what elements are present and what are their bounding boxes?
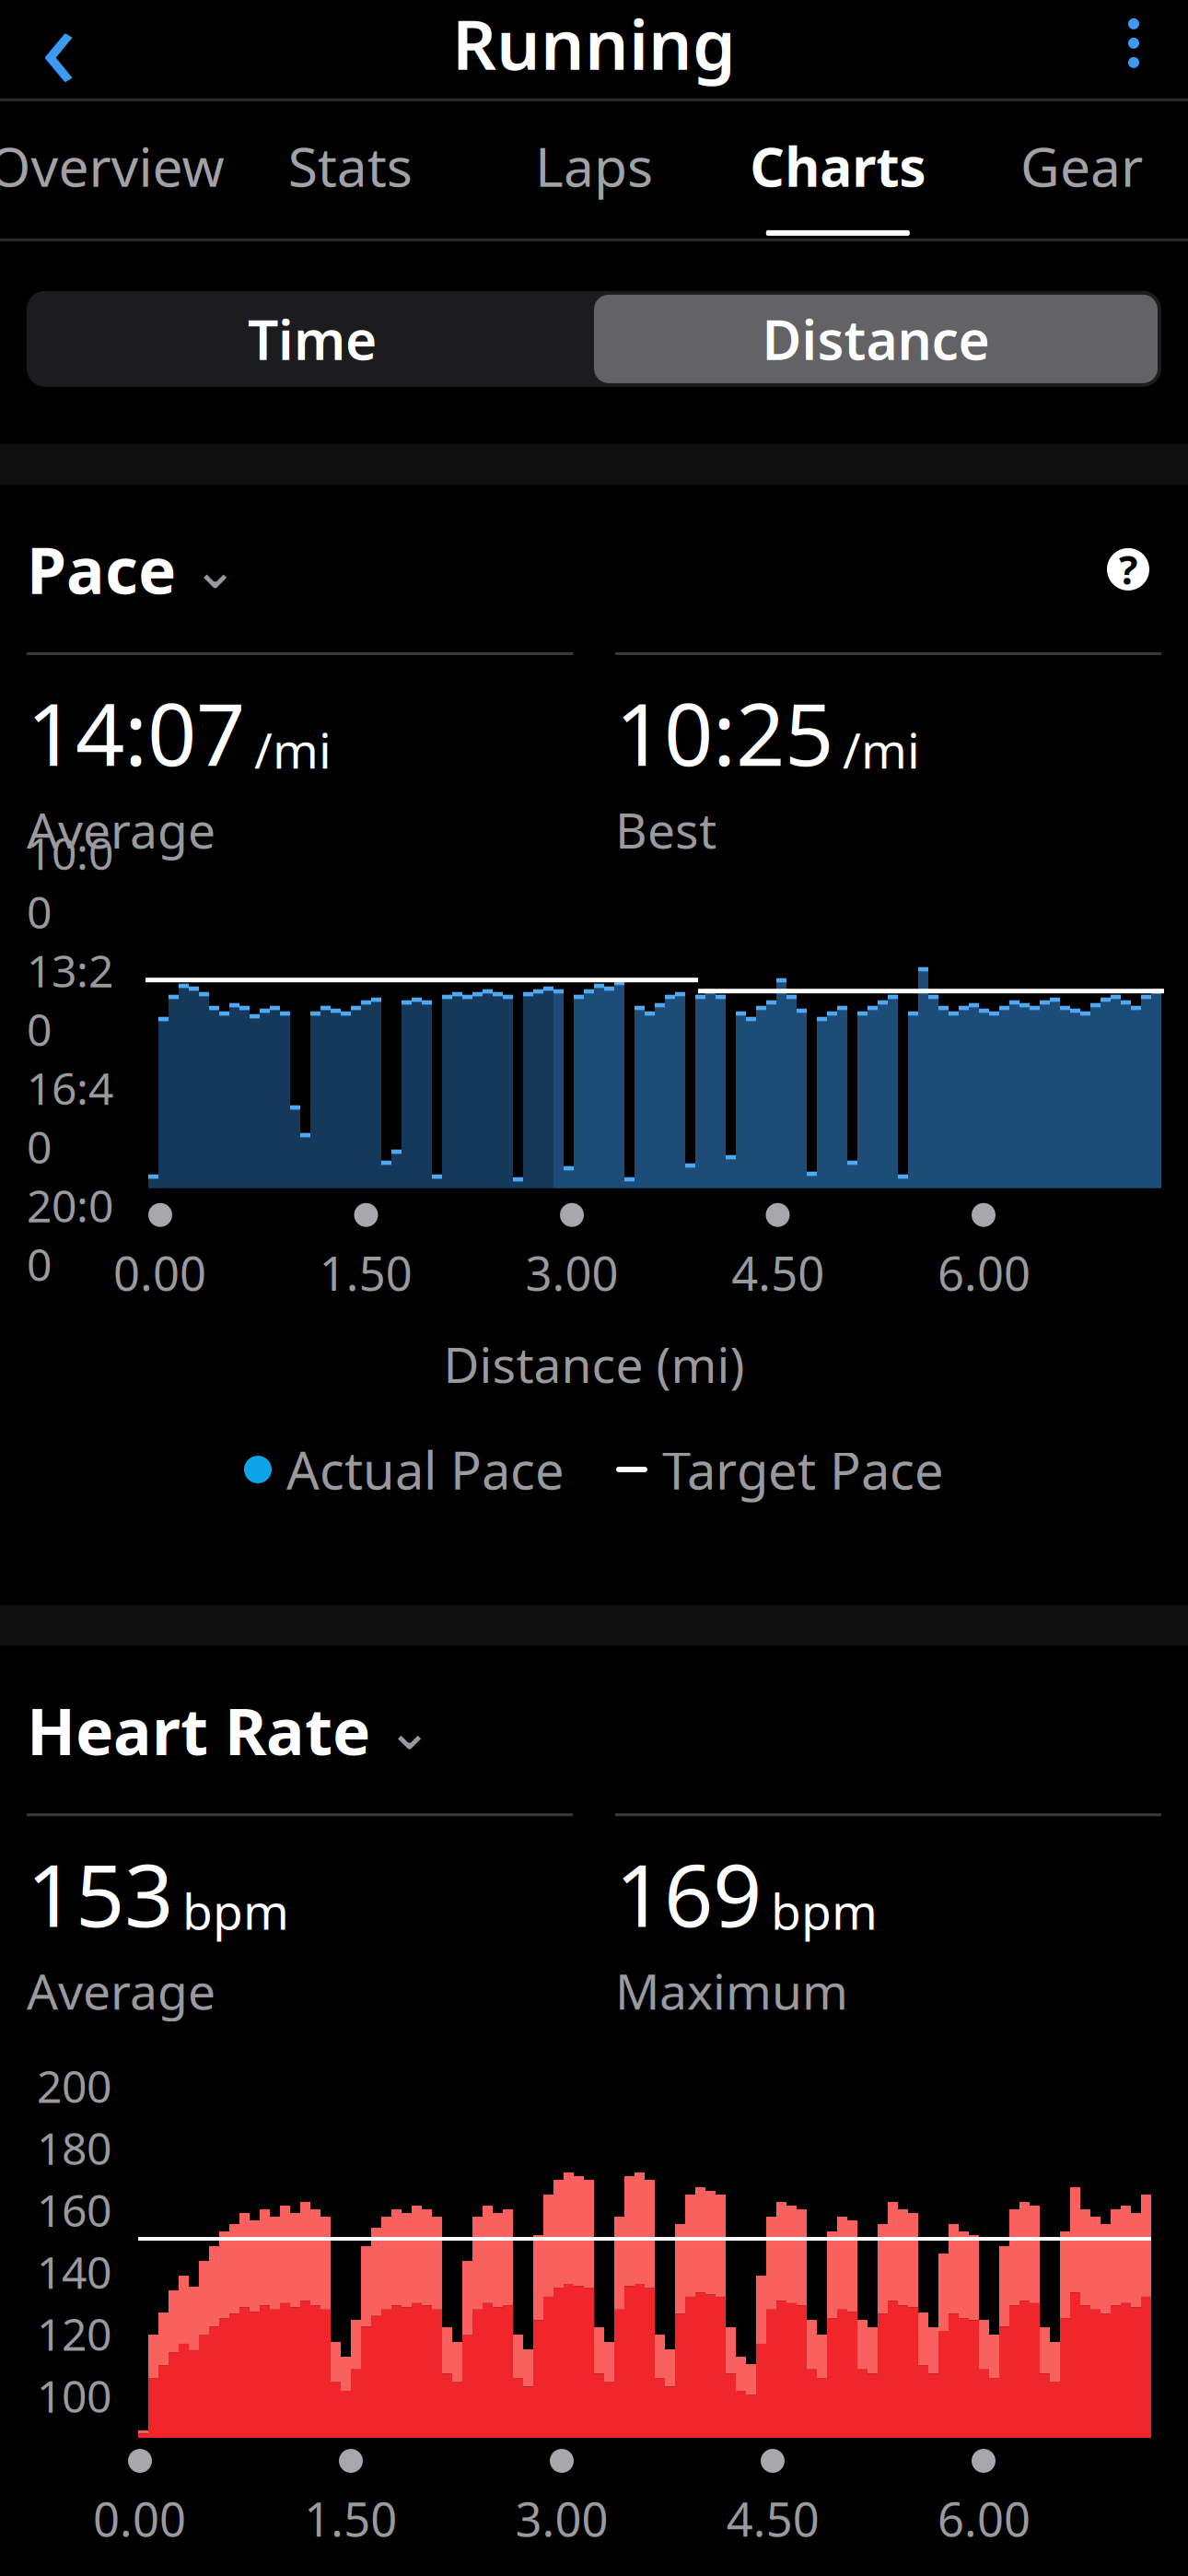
staticText: Target Pace <box>662 1435 944 1504</box>
staticText: 16:40 <box>27 1058 113 1176</box>
staticText: 153 <box>27 1836 173 1951</box>
staticText: Distance (mi) <box>443 1331 745 1397</box>
staticText: 10:25 <box>615 675 833 789</box>
button[interactable]: Overview <box>0 101 228 241</box>
button[interactable]: Distance <box>594 295 1158 383</box>
staticText: /mi <box>254 717 332 782</box>
staticText: 120 <box>37 2304 111 2363</box>
staticText: 4.50 <box>731 1242 825 1304</box>
button[interactable]: Laps <box>472 101 716 241</box>
staticText: Stats <box>288 130 412 202</box>
staticText: ⌄ <box>387 1700 432 1761</box>
staticText: 3.00 <box>525 1242 618 1304</box>
staticText: Gear <box>1020 130 1143 202</box>
staticText: bpm <box>182 1878 289 1943</box>
staticText: 0.00 <box>113 1242 206 1304</box>
staticText: Pace <box>27 527 176 612</box>
staticText: /mi <box>843 717 920 782</box>
staticText: ⌄ <box>192 539 238 600</box>
staticText: 1.50 <box>304 2488 397 2550</box>
staticText: Actual Pace <box>286 1435 565 1504</box>
staticText: ? <box>1119 543 1137 595</box>
button[interactable]: Gear <box>960 101 1188 241</box>
staticText: 6.00 <box>938 1242 1031 1304</box>
staticText: 169 <box>615 1836 762 1951</box>
staticText: 160 <box>37 2180 111 2239</box>
staticText: 140 <box>37 2242 111 2301</box>
staticText: Running <box>452 0 736 89</box>
staticText: 14:07 <box>27 675 245 789</box>
staticText: 0.00 <box>93 2488 186 2550</box>
staticText: Charts <box>750 130 926 202</box>
staticText: bpm <box>771 1878 878 1943</box>
button[interactable]: Stats <box>228 101 472 241</box>
staticText: Overview <box>0 130 224 202</box>
button[interactable]: Pace <box>27 527 238 612</box>
button[interactable]: Heart Rate <box>27 1688 432 1773</box>
staticText: 3.00 <box>515 2488 608 2550</box>
staticText: Heart Rate <box>27 1688 370 1773</box>
staticText: Average <box>27 797 215 862</box>
staticText: 100 <box>37 2366 111 2425</box>
staticText: 180 <box>37 2118 111 2177</box>
button[interactable]: Back <box>0 0 119 98</box>
staticText: Maximum <box>615 1958 848 2023</box>
button[interactable]: Charts <box>716 101 960 241</box>
staticText: Laps <box>535 130 653 202</box>
button[interactable]: More options <box>1078 0 1188 98</box>
staticText: Time <box>248 303 377 375</box>
staticText: 20:00 <box>27 1176 113 1293</box>
staticText: Distance <box>762 303 990 375</box>
staticText: 200 <box>37 2056 111 2115</box>
staticText: Average <box>27 1958 215 2023</box>
button[interactable]: Time <box>30 295 594 383</box>
staticText: 10:00 <box>27 823 113 941</box>
staticText: Best <box>615 797 716 862</box>
staticText: ‹ <box>41 0 77 122</box>
staticText: 6.00 <box>938 2488 1031 2550</box>
staticText: 13:20 <box>27 941 113 1058</box>
staticText: 1.50 <box>319 1242 412 1304</box>
button[interactable]: Help about Pace <box>1095 536 1161 602</box>
staticText: 4.50 <box>726 2488 819 2550</box>
